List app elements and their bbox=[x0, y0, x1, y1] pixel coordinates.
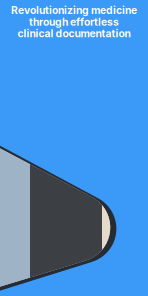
staticText: clinical documentation bbox=[17, 27, 130, 40]
staticText: through effortless bbox=[29, 16, 119, 28]
staticText: Revolutionizing medicine bbox=[11, 4, 137, 17]
